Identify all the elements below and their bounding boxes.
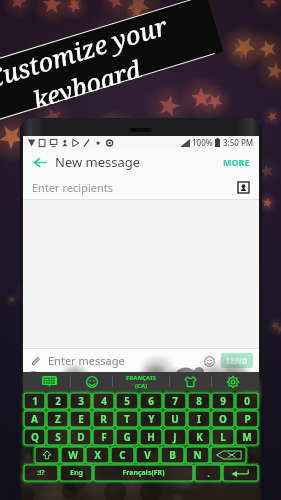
button[interactable]: X	[86, 447, 109, 463]
button[interactable]: Emoji	[71, 372, 112, 391]
button[interactable]: R	[93, 411, 114, 427]
button[interactable]: U	[164, 411, 186, 427]
button[interactable]: .	[195, 465, 221, 481]
staticText: R	[100, 412, 107, 426]
button[interactable]: Emoji	[202, 354, 216, 368]
button[interactable]: E	[70, 411, 91, 427]
staticText: S	[55, 430, 61, 444]
button[interactable]: 7	[164, 393, 186, 409]
button[interactable]: P	[236, 411, 258, 427]
staticText: F	[101, 430, 107, 444]
staticText: B	[169, 448, 176, 462]
staticText: N	[193, 448, 202, 462]
button[interactable]: 0	[236, 393, 258, 409]
button[interactable]: Enter recipients	[23, 175, 259, 199]
staticText: New message	[55, 153, 141, 171]
staticText: SEND	[226, 355, 248, 366]
staticText: E	[78, 412, 84, 426]
staticText: A	[31, 412, 38, 426]
button[interactable]: Shift	[35, 447, 59, 463]
staticText: Français(FR)	[122, 468, 165, 478]
staticText: 3	[78, 394, 84, 408]
staticText: J	[173, 430, 177, 444]
button[interactable]: T	[116, 411, 138, 427]
button[interactable]: O	[212, 411, 234, 427]
button[interactable]: Français(FR)	[94, 465, 193, 481]
staticText: 7	[172, 394, 178, 408]
staticText: M	[242, 430, 252, 444]
button[interactable]: Keyboard	[29, 372, 70, 391]
staticText: T	[124, 412, 130, 426]
staticText: :!?	[37, 468, 45, 478]
staticText: FRANÇAIS	[126, 374, 156, 382]
button[interactable]: SEND	[221, 353, 253, 368]
staticText: C	[119, 448, 126, 462]
staticText: Enter message	[48, 353, 125, 368]
staticText: Customize your keyboard	[0, 0, 224, 134]
staticText: Enter recipients	[32, 180, 113, 195]
staticText: 0	[244, 394, 250, 408]
button[interactable]: Z	[47, 411, 68, 427]
staticText: W	[68, 448, 78, 462]
button[interactable]: Y	[140, 411, 162, 427]
button[interactable]: Add contact	[237, 181, 250, 194]
button[interactable]: G	[116, 429, 138, 445]
button[interactable]: Enter	[223, 465, 258, 481]
button[interactable]: I	[188, 411, 210, 427]
button[interactable]: K	[188, 429, 210, 445]
button[interactable]: 8	[188, 393, 210, 409]
staticText: 100%	[192, 137, 213, 148]
button[interactable]: J	[164, 429, 186, 445]
button[interactable]: 3	[70, 393, 91, 409]
staticText: 3:50 PM	[223, 137, 254, 148]
staticText: 4	[101, 394, 107, 408]
button[interactable]: N	[186, 447, 209, 463]
button[interactable]: M	[236, 429, 258, 445]
staticText: (CA)	[135, 382, 148, 390]
staticText: 2	[55, 394, 61, 408]
button[interactable]: Settings	[212, 372, 253, 391]
button[interactable]: Eng	[60, 465, 92, 481]
staticText: Eng	[70, 468, 83, 478]
button[interactable]: L	[212, 429, 234, 445]
button[interactable]: H	[140, 429, 162, 445]
staticText: .	[207, 467, 210, 479]
button[interactable]: S	[47, 429, 68, 445]
button[interactable]: FRANÇAIS	[113, 372, 169, 391]
button[interactable]: 1	[24, 393, 45, 409]
button[interactable]: D	[70, 429, 91, 445]
staticText: Q	[31, 430, 39, 444]
button[interactable]: Backspace	[211, 447, 246, 463]
staticText: MORE	[223, 156, 250, 168]
button[interactable]: :!?	[24, 465, 58, 481]
button[interactable]: 5	[116, 393, 138, 409]
button[interactable]: Back	[30, 153, 48, 171]
button[interactable]: 2	[47, 393, 68, 409]
staticText: K	[196, 430, 203, 444]
button[interactable]: B	[161, 447, 184, 463]
button[interactable]: 4	[93, 393, 114, 409]
staticText: D	[77, 430, 85, 444]
staticText: I	[197, 412, 201, 426]
staticText: G	[123, 430, 131, 444]
button[interactable]: Themes	[170, 372, 211, 391]
button[interactable]: 9	[212, 393, 234, 409]
button[interactable]: C	[111, 447, 134, 463]
staticText: 6	[148, 394, 154, 408]
button[interactable]: W	[61, 447, 84, 463]
button[interactable]: MORE	[221, 153, 252, 171]
staticText: H	[147, 430, 155, 444]
staticText: P	[244, 412, 251, 426]
staticText: 9	[220, 394, 226, 408]
button[interactable]: Attach	[29, 354, 43, 368]
staticText: L	[220, 430, 226, 444]
staticText: 8	[196, 394, 202, 408]
button[interactable]: 6	[140, 393, 162, 409]
button[interactable]: A	[24, 411, 45, 427]
button[interactable]: V	[136, 447, 159, 463]
staticText: Z	[55, 412, 61, 426]
staticText: V	[144, 448, 151, 462]
button[interactable]: Q	[24, 429, 45, 445]
button[interactable]: F	[93, 429, 114, 445]
staticText: 1	[32, 394, 38, 408]
